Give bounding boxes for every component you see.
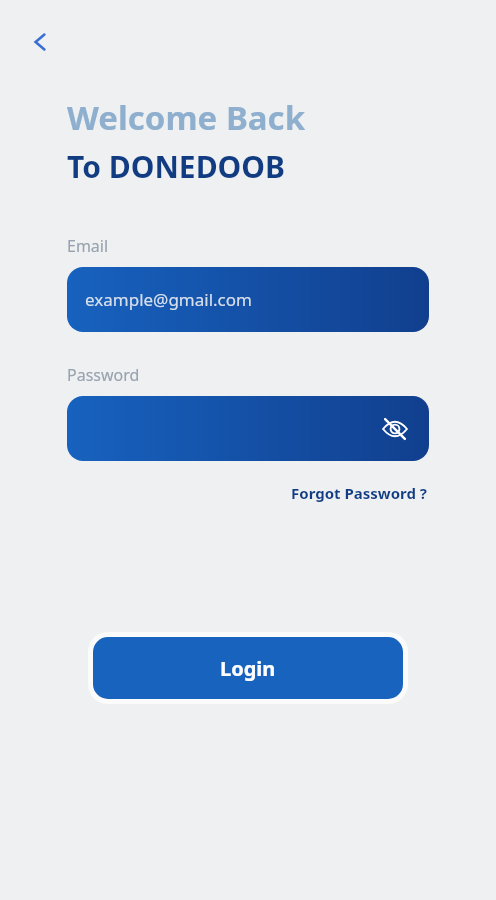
staticText: example@gmail.com [85, 288, 252, 311]
staticText: Welcome Back [67, 95, 306, 140]
button[interactable]: Back [18, 20, 62, 64]
staticText: Password [67, 364, 140, 386]
button[interactable]: example@gmail.com [67, 267, 429, 332]
staticText: Login [220, 655, 276, 682]
button[interactable]: Toggle password visibility [67, 396, 429, 461]
button[interactable]: Toggle password visibility [377, 411, 413, 447]
staticText: To DONEDOOB [67, 146, 286, 187]
button[interactable]: Forgot Password ? [289, 479, 429, 507]
staticText: Email [67, 235, 109, 257]
staticText: Forgot Password ? [291, 483, 427, 503]
button[interactable]: Login [93, 637, 403, 699]
